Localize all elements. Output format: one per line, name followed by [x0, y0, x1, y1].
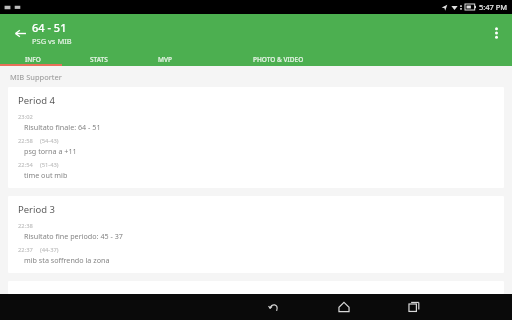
button[interactable]: Back: [252, 294, 296, 320]
staticText: psg torna a +11: [24, 146, 77, 156]
button[interactable]: Home: [322, 294, 366, 320]
staticText: PSG vs MIB: [32, 36, 72, 46]
staticText: 23:02: [18, 113, 33, 121]
staticText: Period 4: [18, 94, 55, 107]
staticText: Period 3: [18, 203, 55, 216]
staticText: 22:37: [18, 246, 33, 254]
staticText: 22:54: [18, 161, 33, 169]
button[interactable]: More options: [483, 20, 509, 46]
button[interactable]: Period 4: [8, 87, 504, 188]
staticText: 22:58: [18, 137, 33, 145]
staticText: 64 - 51: [32, 20, 67, 35]
staticText: Risultato fine periodo: 45 - 37: [24, 231, 123, 241]
staticText: (51-43): [40, 161, 59, 169]
button[interactable]: Recent apps: [392, 294, 436, 320]
staticText: time out mib: [24, 170, 68, 180]
button[interactable]: Period 3: [8, 196, 504, 273]
button[interactable]: PHOTO & VIDEO: [198, 52, 358, 66]
staticText: mib sta soffrendo la zona: [24, 255, 110, 265]
staticText: Risultato finale: 64 - 51: [24, 122, 101, 132]
staticText: INFO: [25, 55, 41, 64]
staticText: MVP: [158, 55, 172, 64]
button[interactable]: Back: [6, 19, 34, 47]
staticText: 22:38: [18, 222, 33, 230]
staticText: (44-37): [40, 246, 59, 254]
staticText: (54-43): [40, 137, 59, 145]
staticText: 5:47 PM: [479, 2, 508, 12]
button[interactable]: INFO: [0, 52, 66, 66]
staticText: MIB Supporter: [10, 72, 62, 82]
staticText: STATS: [90, 55, 108, 64]
button[interactable]: STATS: [66, 52, 132, 66]
staticText: PHOTO & VIDEO: [253, 55, 304, 64]
button[interactable]: MVP: [132, 52, 198, 66]
